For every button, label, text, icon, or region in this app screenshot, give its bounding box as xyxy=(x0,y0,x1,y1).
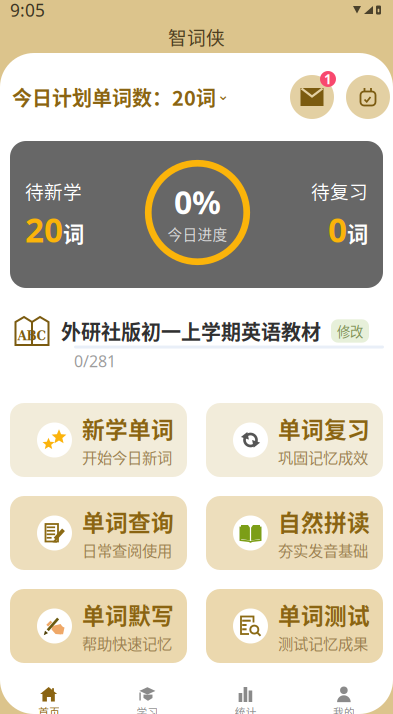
button[interactable]: 新学单词 xyxy=(10,403,187,477)
staticText: 待新学 xyxy=(25,177,82,204)
button[interactable]: 单词测试 xyxy=(206,589,383,663)
staticText: 日常查阅使用 xyxy=(82,539,172,561)
staticText: 20 xyxy=(25,207,63,252)
staticText: 词 xyxy=(63,218,84,249)
button[interactable]: 我的 xyxy=(295,687,393,714)
button[interactable]: 学习 xyxy=(98,687,196,714)
button[interactable]: 单词复习 xyxy=(206,403,383,477)
staticText: 单词测试 xyxy=(278,598,370,631)
staticText: 自然拼读 xyxy=(278,505,370,538)
staticText: 单词默写 xyxy=(82,598,174,631)
staticText: 我的 xyxy=(333,704,355,714)
staticText: 测试记忆成果 xyxy=(278,632,368,654)
button[interactable]: ABC xyxy=(0,288,393,403)
staticText: 开始今日新词 xyxy=(82,446,172,468)
button[interactable]: 自然拼读 xyxy=(206,496,383,570)
staticText: 今日进度 xyxy=(167,223,227,244)
staticText: 0/281 xyxy=(74,350,116,372)
button[interactable]: Messages xyxy=(287,72,337,122)
button[interactable]: Calendar xyxy=(343,72,393,122)
staticText: 学习 xyxy=(136,704,158,714)
staticText: 首页 xyxy=(38,704,60,714)
staticText: 待复习 xyxy=(311,177,368,204)
staticText: 帮助快速记忆 xyxy=(82,632,172,654)
staticText: 1 xyxy=(324,70,332,88)
staticText: 词 xyxy=(347,218,368,249)
staticText: 智词侠 xyxy=(168,23,225,50)
staticText: 修改 xyxy=(337,321,363,341)
staticText: 单词查询 xyxy=(82,505,174,538)
staticText: 单词复习 xyxy=(278,412,370,445)
staticText: 夯实发音基础 xyxy=(278,539,368,561)
staticText: 9:05 xyxy=(10,0,45,21)
staticText: 新学单词 xyxy=(82,412,174,445)
staticText: 今日计划单词数：20词 xyxy=(12,82,216,111)
button[interactable]: 单词默写 xyxy=(10,589,187,663)
button[interactable]: 今日计划单词数：20词 xyxy=(12,82,229,111)
staticText: 0% xyxy=(174,181,221,223)
staticText: ABC xyxy=(17,329,46,343)
staticText: 统计 xyxy=(235,704,257,714)
button[interactable]: 单词查询 xyxy=(10,496,187,570)
button[interactable]: 首页 xyxy=(0,687,98,714)
button[interactable]: 统计 xyxy=(196,687,295,714)
staticText: ⌄ xyxy=(217,87,229,103)
staticText: 巩固记忆成效 xyxy=(278,446,368,468)
staticText: 0 xyxy=(328,207,347,252)
staticText: 外研社版初一上学期英语教材 xyxy=(61,316,321,345)
